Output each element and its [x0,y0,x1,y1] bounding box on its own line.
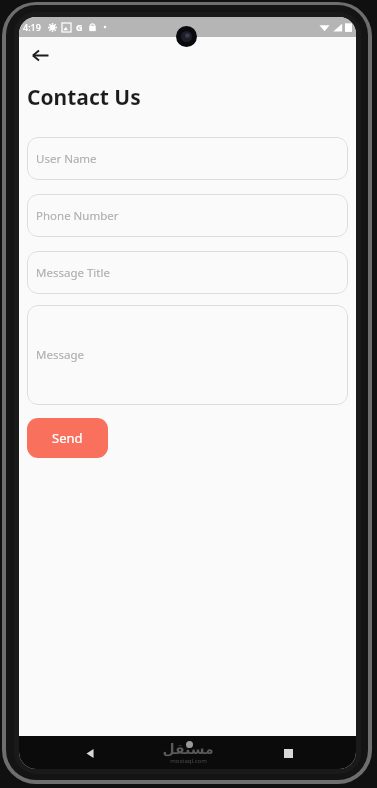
staticText: مستقل [162,741,214,757]
staticText: Message Title [36,265,110,281]
staticText: 4:19 [23,21,41,33]
staticText: User Name [36,151,97,167]
staticText: Contact Us [27,83,141,112]
staticText: Message [36,347,84,363]
button[interactable]: User Name [27,137,348,180]
button[interactable]: Send [27,418,108,458]
button[interactable]: Back [77,740,103,766]
staticText: Phone Number [36,208,119,224]
button[interactable]: Message Title [27,251,348,294]
button[interactable]: Back [23,38,57,72]
staticText: G [76,21,83,33]
staticText: Send [52,429,83,447]
staticText: mostaql.com [170,757,207,765]
button[interactable]: Phone Number [27,194,348,237]
button[interactable]: Message [27,305,348,405]
button[interactable]: Recent apps [275,740,301,766]
